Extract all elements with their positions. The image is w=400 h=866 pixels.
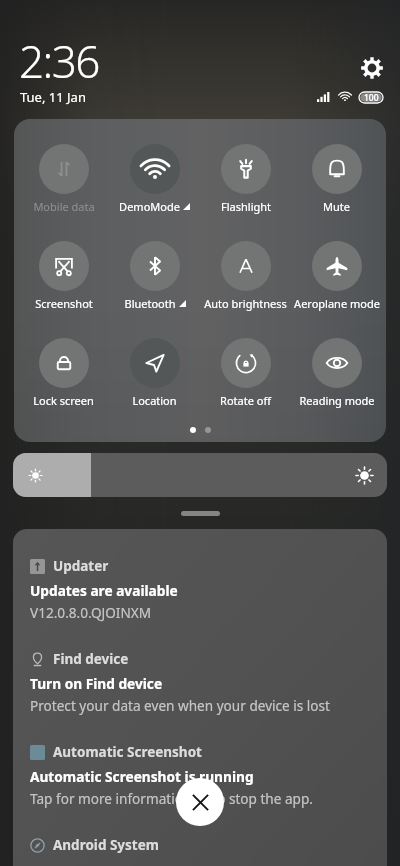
staticText: Turn on Find device [30, 674, 163, 693]
button[interactable]: Mobile data [18, 144, 109, 214]
staticText: Screenshot [35, 296, 93, 311]
staticText: Aeroplane mode [294, 296, 380, 311]
staticText: DemoMode [119, 199, 180, 214]
staticText: Android System [53, 836, 159, 854]
button[interactable]: Automatic Screenshot [30, 743, 375, 808]
staticText: Automatic Screenshot [53, 743, 202, 761]
button[interactable]: Bluetooth [109, 241, 200, 311]
staticText: Automatic Screenshot is running [30, 767, 254, 786]
button[interactable]: Reading mode [291, 338, 382, 408]
button[interactable]: Rotate off [200, 338, 291, 408]
staticText: 100 [364, 92, 379, 103]
button[interactable]: DemoMode [109, 144, 200, 214]
button[interactable]: Android System [30, 836, 375, 854]
staticText: Rotate off [220, 393, 271, 408]
staticText: Mobile data [33, 199, 95, 214]
button[interactable]: Settings [355, 51, 389, 85]
staticText: V12.0.8.0.QJOINXM [30, 603, 152, 622]
staticText: Find device [53, 650, 129, 668]
button[interactable]: Close [176, 778, 224, 826]
staticText: Protect your data even when your device … [30, 696, 330, 715]
staticText: Tap for more information or to stop the … [30, 789, 313, 808]
staticText: Location [132, 393, 177, 408]
staticText: Updates are available [30, 581, 178, 600]
button[interactable]: Find device [30, 650, 375, 715]
button[interactable]: Flashlight [200, 144, 291, 214]
button[interactable]: Screenshot [18, 241, 109, 311]
staticText: Mute [323, 199, 350, 214]
button[interactable]: Updater [30, 557, 375, 622]
button[interactable]: Lock screen [18, 338, 109, 408]
staticText: Reading mode [299, 393, 375, 408]
staticText: 2:36 [19, 31, 99, 91]
staticText: Tue, 11 Jan [20, 88, 86, 106]
staticText: Bluetooth [124, 296, 176, 311]
button[interactable]: Brightness [13, 453, 387, 497]
button[interactable]: Mute [291, 144, 382, 214]
staticText: Flashlight [221, 199, 271, 214]
staticText: Auto brightness [204, 296, 287, 311]
staticText: Lock screen [33, 393, 94, 408]
button[interactable]: Aeroplane mode [291, 241, 382, 311]
button[interactable]: Location [109, 338, 200, 408]
staticText: Updater [53, 557, 109, 575]
button[interactable]: Auto brightness [200, 241, 291, 311]
